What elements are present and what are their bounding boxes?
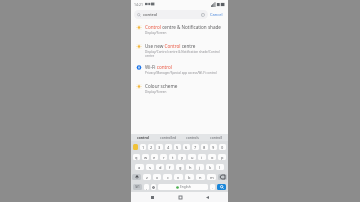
staticText: controll <box>210 135 223 140</box>
button[interactable]: x <box>153 174 161 180</box>
button[interactable]: 4 <box>165 144 172 150</box>
button[interactable]: 5 <box>174 144 181 150</box>
button[interactable]: v <box>174 174 183 180</box>
staticText: English <box>180 185 191 189</box>
staticText: n <box>199 175 202 180</box>
button[interactable]: e <box>151 154 158 160</box>
button[interactable]: 6 <box>183 144 190 150</box>
staticText: u <box>191 155 194 160</box>
button[interactable]: Search <box>217 184 226 190</box>
staticText: 1 <box>142 145 145 150</box>
button[interactable]: r <box>160 154 167 160</box>
button[interactable]: controll <box>204 134 228 141</box>
staticText: controls <box>186 135 199 140</box>
staticText: h <box>189 165 192 170</box>
staticText: z <box>146 175 148 180</box>
button[interactable]: Wi-Fi control <box>131 61 228 80</box>
button[interactable]: 9 <box>210 144 217 150</box>
button[interactable]: g <box>176 164 184 170</box>
staticText: Display/Screen <box>145 90 167 94</box>
button[interactable]: m <box>207 174 216 180</box>
staticText: y <box>181 155 184 160</box>
staticText: control <box>143 12 158 18</box>
staticText: 8 <box>203 145 206 150</box>
button[interactable]: 8 <box>201 144 208 150</box>
button[interactable]: English <box>158 184 208 190</box>
staticText: Wi-Fi control <box>145 64 172 70</box>
staticText: 4 <box>167 145 170 150</box>
staticText: b <box>188 175 191 180</box>
staticText: d <box>159 165 162 170</box>
button[interactable]: Colour scheme <box>131 80 228 99</box>
staticText: k <box>209 165 212 170</box>
staticText: w <box>144 155 148 160</box>
button[interactable]: z <box>143 174 151 180</box>
button[interactable]: 1 <box>140 144 146 150</box>
button[interactable]: o <box>208 154 216 160</box>
staticText: s <box>149 165 151 170</box>
button[interactable]: t <box>169 154 176 160</box>
button[interactable]: 2 <box>148 144 154 150</box>
button[interactable]: b <box>185 174 194 180</box>
staticText: . <box>212 185 214 190</box>
button[interactable]: !#1 <box>133 184 142 190</box>
staticText: 5 <box>176 145 179 150</box>
button[interactable]: j <box>196 164 204 170</box>
button[interactable]: k <box>206 164 214 170</box>
button[interactable]: Use new Control centre <box>131 40 228 61</box>
button[interactable]: n <box>196 174 205 180</box>
button[interactable]: Clear search <box>200 12 205 17</box>
staticText: 7 <box>194 145 197 150</box>
button[interactable]: s <box>146 164 154 170</box>
staticText: m <box>210 175 214 180</box>
button[interactable]: . <box>210 184 215 190</box>
button[interactable]: i <box>198 154 206 160</box>
button[interactable]: a <box>135 164 144 170</box>
button[interactable]: c <box>163 174 172 180</box>
button[interactable]: q <box>133 154 140 160</box>
staticText: Privacy/Manager/Special app access/Wi-Fi… <box>145 71 217 75</box>
button[interactable]: Recents <box>146 192 158 202</box>
button[interactable]: Cancel <box>208 10 225 19</box>
button[interactable]: Shift <box>132 174 141 180</box>
button[interactable]: 3 <box>156 144 163 150</box>
button[interactable]: f <box>166 164 174 170</box>
button[interactable]: h <box>186 164 194 170</box>
staticText: 14:21 <box>134 2 143 7</box>
button[interactable]: d <box>156 164 164 170</box>
staticText: i <box>201 155 203 160</box>
button[interactable]: Emoji <box>144 184 149 190</box>
staticText: 2 <box>150 145 153 150</box>
staticText: x <box>156 175 159 180</box>
button[interactable]: control <box>131 134 156 141</box>
staticText: a <box>138 165 141 170</box>
staticText: g <box>179 165 182 170</box>
button[interactable]: Settings <box>151 184 156 190</box>
button[interactable]: u <box>188 154 196 160</box>
button[interactable]: 0 <box>219 144 226 150</box>
button[interactable]: controlled <box>156 134 180 141</box>
staticText: l <box>219 165 221 170</box>
staticText: p <box>221 155 224 160</box>
staticText: 9 <box>212 145 215 150</box>
staticText: Control centre & Notification shade <box>145 24 221 30</box>
staticText: q <box>135 155 138 160</box>
button[interactable]: Home <box>174 192 186 202</box>
button[interactable]: Emoji <box>133 144 138 150</box>
button[interactable]: 7 <box>192 144 199 150</box>
staticText: Cancel <box>210 12 223 17</box>
button[interactable]: Back <box>201 192 213 202</box>
staticText: Colour scheme <box>145 83 178 89</box>
staticText: Display/Control centre & Notification sh… <box>145 50 224 58</box>
button[interactable]: y <box>178 154 186 160</box>
button[interactable]: l <box>216 164 224 170</box>
button[interactable]: w <box>142 154 149 160</box>
button[interactable]: p <box>218 154 226 160</box>
button[interactable]: Backspace <box>218 174 227 180</box>
button[interactable]: Control centre & Notification shade <box>131 21 228 40</box>
staticText: 3 <box>158 145 161 150</box>
button[interactable]: controls <box>180 134 204 141</box>
staticText: j <box>199 165 201 170</box>
staticText: !#1 <box>135 185 140 189</box>
button[interactable]: control <box>134 10 208 19</box>
